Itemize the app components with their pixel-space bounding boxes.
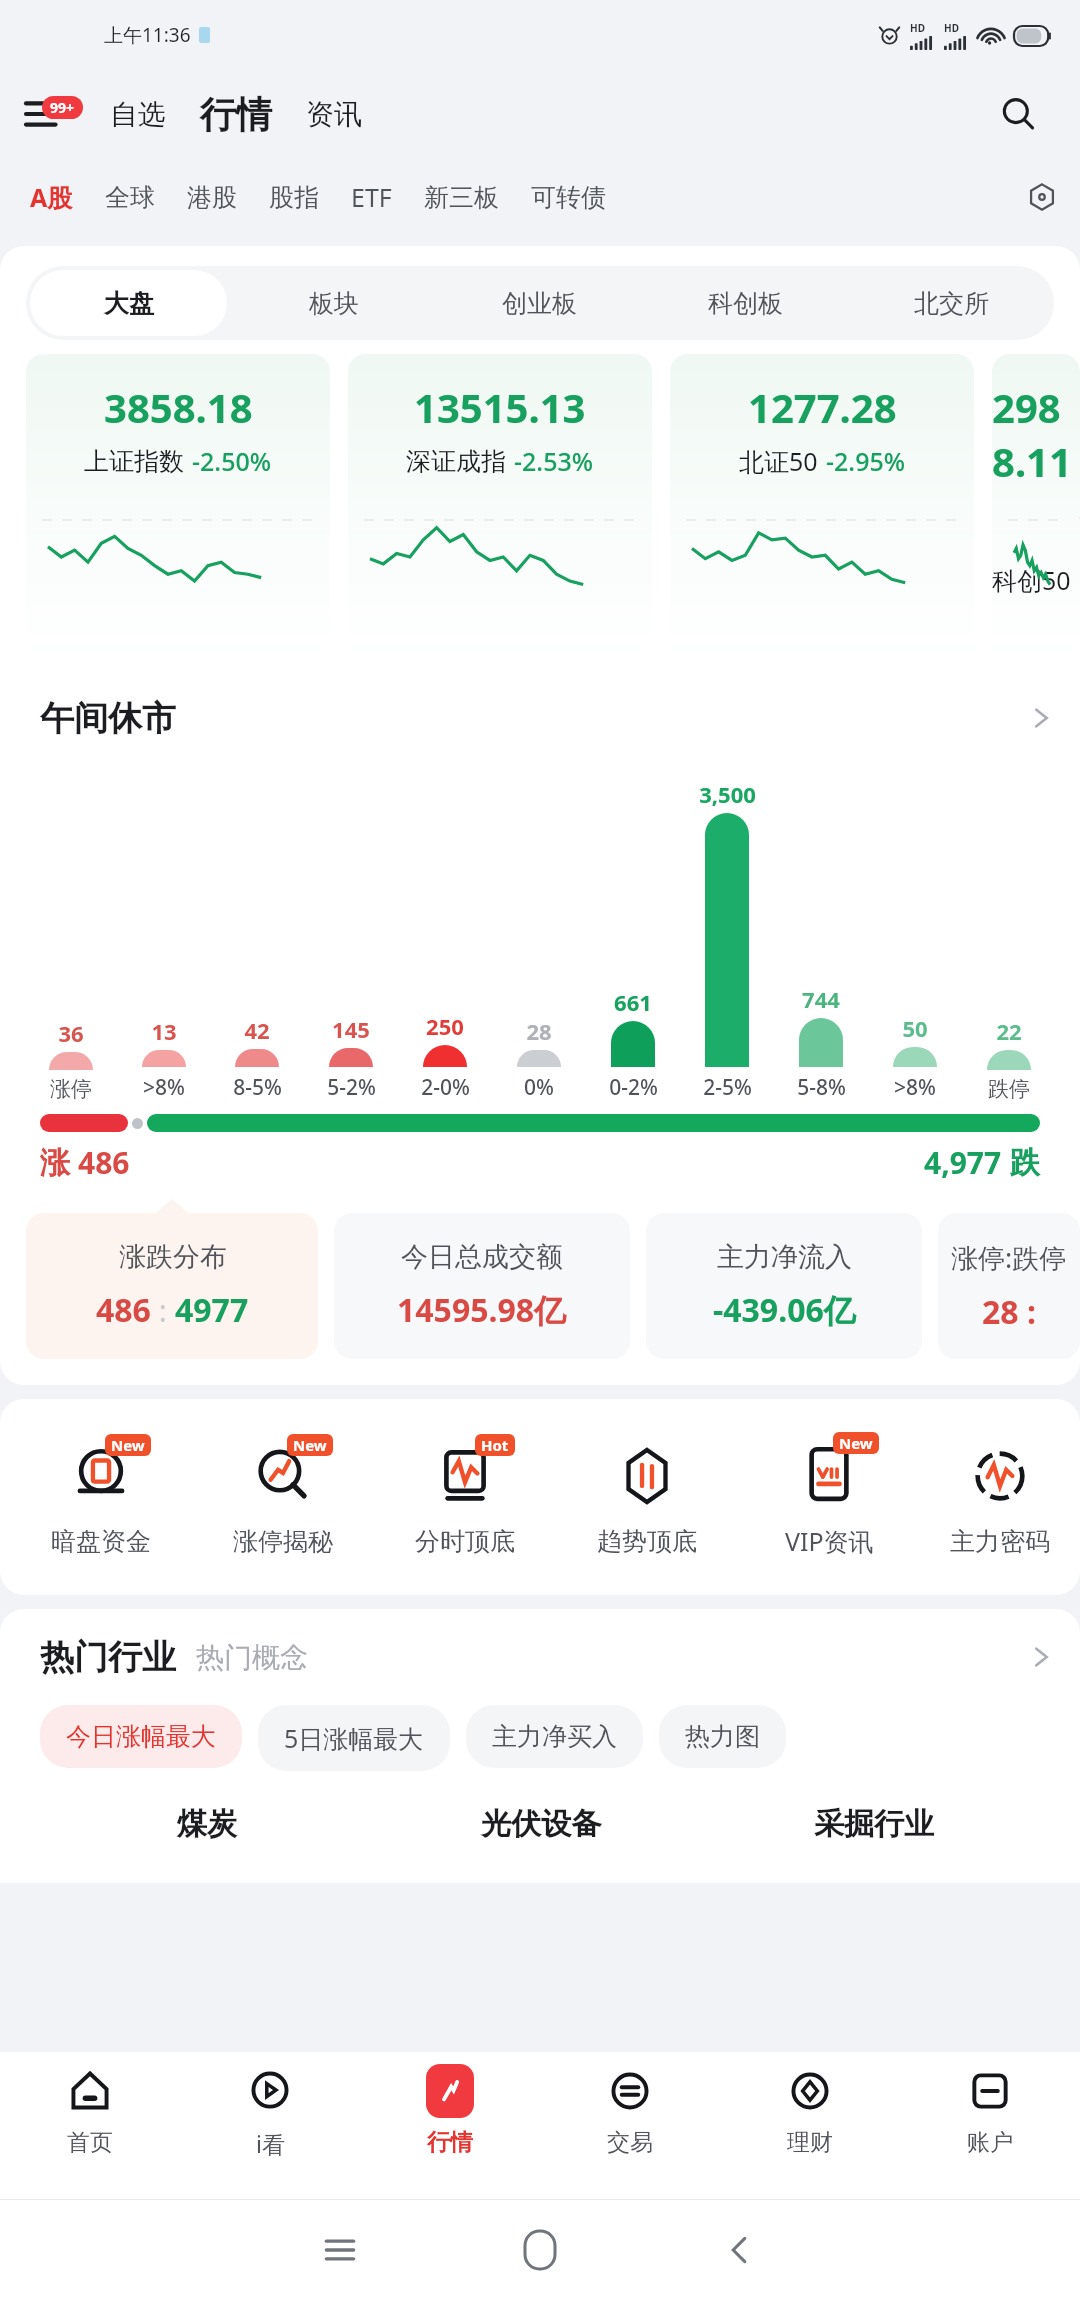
button[interactable]: 今日涨幅最大 [40,1705,242,1768]
button[interactable]: 热门行业 [40,1609,1054,1705]
button[interactable]: 资讯 [300,91,368,138]
staticText: A股 [30,180,73,214]
staticText: 42 [244,1015,270,1045]
button[interactable]: 北交所 [852,270,1050,336]
button[interactable]: 趋势顶底 [556,1438,738,1557]
staticText: 13515.13 [414,380,586,434]
staticText: 14595.98亿 [397,1288,567,1332]
staticText: 661 [614,987,652,1017]
button[interactable]: ETF [347,172,396,222]
staticText: New [293,1435,327,1455]
staticText: 涨 [40,1144,70,1182]
button[interactable]: 3858.18 [26,354,330,662]
staticText: -439.06亿 [713,1288,856,1332]
button[interactable]: New [10,1438,192,1557]
staticText: 交易 [607,2128,653,2157]
staticText: 涨停揭秘 [233,1526,333,1557]
staticText: 可转债 [531,182,606,213]
button[interactable]: 可转债 [527,174,610,221]
button[interactable]: Search [990,86,1046,142]
staticText: 暗盘资金 [51,1526,151,1557]
staticText: 250 [426,1011,464,1041]
button[interactable]: Hot [374,1438,556,1557]
staticText: New [839,1433,873,1453]
staticText: i看 [256,2128,285,2159]
button[interactable]: 股指 [265,174,323,221]
other: Back [723,2233,757,2267]
button[interactable]: 热力图 [659,1705,786,1768]
staticText: 2988.11 [992,380,1080,488]
staticText: 板块 [309,288,359,319]
button[interactable]: Home [0,2064,180,2200]
button[interactable]: A股 [26,172,77,222]
staticText: 账户 [967,2128,1013,2157]
staticText: : [151,1290,175,1331]
staticText: 北证50 [739,444,818,478]
staticText: 午间休市 [40,697,176,740]
button[interactable]: 今日总成交额 [334,1213,630,1359]
button[interactable]: 科创板 [646,270,844,336]
staticText: 煤炭 [177,1805,237,1843]
button[interactable]: 新三板 [420,174,503,221]
staticText: 行情 [200,92,272,137]
button[interactable]: 创业板 [440,270,638,336]
other: Markets [426,2064,474,2118]
staticText: >8% [143,1073,185,1102]
button[interactable]: 1277.28 [670,354,974,662]
staticText: 涨停 [50,1076,92,1102]
button[interactable]: 港股 [183,174,241,221]
button[interactable]: Menu [26,89,88,139]
staticText: -2.53% [514,444,594,478]
staticText: 4,977 [924,1142,1002,1183]
button[interactable]: Settings [1018,173,1066,221]
staticText: 热门行业 [40,1636,176,1679]
button[interactable]: 5日涨幅最大 [258,1705,450,1771]
staticText: 北交所 [914,288,989,319]
staticText: 热门概念 [196,1640,308,1675]
button[interactable]: Finance [720,2064,900,2200]
button[interactable]: 行情 [194,90,278,139]
button[interactable]: 2988.11 [992,354,1080,662]
button[interactable]: 午间休市 [40,680,1054,756]
button[interactable]: 涨跌分布 [26,1213,318,1359]
other: Recents [323,2233,357,2267]
button[interactable]: 主力净流入 [646,1213,922,1359]
staticText: 145 [332,1014,370,1044]
button[interactable]: 全球 [101,174,159,221]
button[interactable]: New [738,1436,920,1558]
button[interactable]: 板块 [235,270,432,336]
staticText: 涨停:跌停 [951,1239,1067,1276]
staticText: 跌 [1010,1144,1040,1182]
button[interactable]: Watch [180,2064,360,2200]
staticText: 50 [902,1013,928,1043]
button[interactable]: Trade [540,2064,720,2200]
staticText: 股指 [269,182,319,213]
staticText: -2.50% [192,444,272,478]
staticText: 涨跌分布 [119,1240,227,1274]
other: Finance [787,2068,833,2114]
button[interactable]: New [192,1438,374,1557]
staticText: 上午11:36 [104,22,191,48]
button[interactable]: 大盘 [30,270,227,336]
staticText: 趋势顶底 [597,1526,697,1557]
button[interactable]: 主力净买入 [466,1705,643,1768]
button[interactable]: 自选 [104,91,172,138]
button[interactable]: 主力密码 [920,1438,1080,1557]
other: Account [967,2068,1013,2114]
staticText: 深证成指 [406,446,506,477]
staticText: HD [944,21,959,35]
staticText: 今日涨幅最大 [66,1721,216,1752]
staticText: 主力净流入 [717,1240,852,1274]
button[interactable]: Account [900,2064,1080,2200]
other: Home [525,2231,555,2269]
staticText: >8% [894,1073,936,1102]
staticText: 理财 [787,2128,833,2157]
button[interactable]: Markets [360,2064,540,2200]
button[interactable]: 涨停:跌停 [938,1213,1080,1359]
staticText: 科创板 [708,288,783,319]
staticText: 采掘行业 [814,1805,934,1843]
button[interactable]: 13515.13 [348,354,652,662]
staticText: 1277.28 [748,380,897,434]
staticText: 0% [524,1073,554,1102]
staticText: 3,500 [699,779,756,809]
